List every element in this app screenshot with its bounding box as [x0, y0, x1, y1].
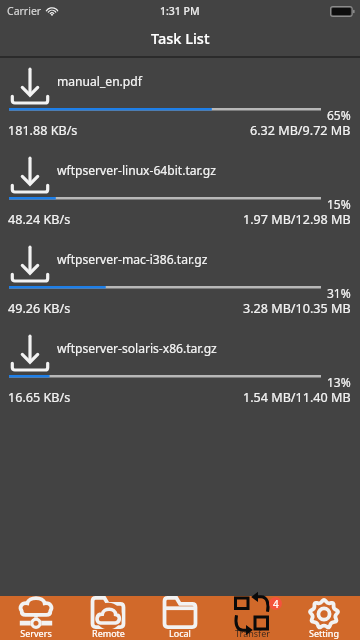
- staticText: Carrier: [7, 4, 42, 18]
- staticText: Remote: [92, 627, 125, 639]
- button[interactable]: wftpserver-mac-i386.tar.gz: [0, 236, 360, 325]
- staticText: 16.65 KB/s: [8, 389, 71, 406]
- staticText: wftpserver-solaris-x86.tar.gz: [57, 340, 217, 356]
- staticText: 181.88 KB/s: [8, 122, 78, 139]
- other: Transfer: [234, 595, 270, 633]
- staticText: 1.54 MB/11.40 MB: [243, 389, 351, 406]
- button[interactable]: Remote: [72, 596, 144, 640]
- button[interactable]: Transfer: [216, 596, 288, 640]
- staticText: wftpserver-mac-i386.tar.gz: [57, 251, 208, 267]
- staticText: 4: [273, 597, 279, 610]
- staticText: Local: [169, 627, 191, 639]
- staticText: 13%: [327, 374, 351, 390]
- staticText: 65%: [327, 107, 351, 123]
- button[interactable]: wftpserver-linux-64bit.tar.gz: [0, 147, 360, 236]
- other: Remote: [90, 596, 126, 629]
- staticText: 31%: [327, 285, 351, 301]
- staticText: Setting: [309, 627, 339, 639]
- button[interactable]: Local: [144, 596, 216, 640]
- staticText: 6.32 MB/9.72 MB: [250, 122, 351, 139]
- staticText: 1.97 MB/12.98 MB: [243, 211, 351, 228]
- staticText: 3.28 MB/10.35 MB: [243, 300, 351, 317]
- button[interactable]: Servers: [0, 596, 72, 640]
- other: Setting: [306, 596, 342, 632]
- staticText: Transfer: [235, 627, 270, 639]
- staticText: Servers: [20, 627, 52, 639]
- button[interactable]: manual_en.pdf: [0, 58, 360, 147]
- staticText: manual_en.pdf: [57, 73, 142, 89]
- button[interactable]: Setting: [288, 596, 360, 640]
- other: Local: [162, 596, 198, 629]
- button[interactable]: wftpserver-solaris-x86.tar.gz: [0, 325, 360, 414]
- staticText: 15%: [327, 196, 351, 212]
- other: Servers: [18, 596, 54, 630]
- staticText: 1:31 PM: [160, 4, 200, 18]
- staticText: Task List: [151, 28, 210, 48]
- staticText: 49.26 KB/s: [8, 300, 71, 317]
- staticText: 48.24 KB/s: [8, 211, 71, 228]
- staticText: wftpserver-linux-64bit.tar.gz: [57, 162, 216, 178]
